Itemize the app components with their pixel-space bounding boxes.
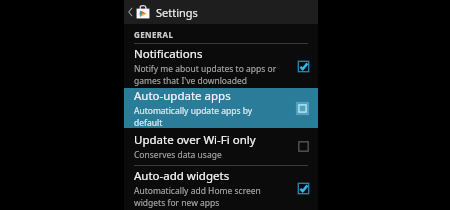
staticText: widgets for new apps [134,197,220,209]
staticText: Settings [156,5,198,20]
staticText: Update over Wi-Fi only [134,132,256,148]
staticText: Automatically update apps by [134,105,253,117]
staticText: Automatically add Home screen [134,185,261,197]
staticText: Conserves data usage [134,149,222,161]
staticText: default [134,117,163,128]
button[interactable]: Auto-add widgets [124,166,318,210]
staticText: Auto-update apps [134,88,231,104]
staticText: Auto-add widgets [134,168,230,184]
button[interactable]: Settings, navigate up [124,0,318,24]
staticText: Notify me about updates to apps or [134,63,277,75]
staticText: games that I've downloaded [134,75,247,87]
staticText: GENERAL [134,29,174,40]
button[interactable]: Notifications [124,44,318,88]
button[interactable]: Auto-update apps [124,88,318,128]
staticText: Notifications [134,46,203,62]
button[interactable]: Update over Wi-Fi only [124,128,318,165]
